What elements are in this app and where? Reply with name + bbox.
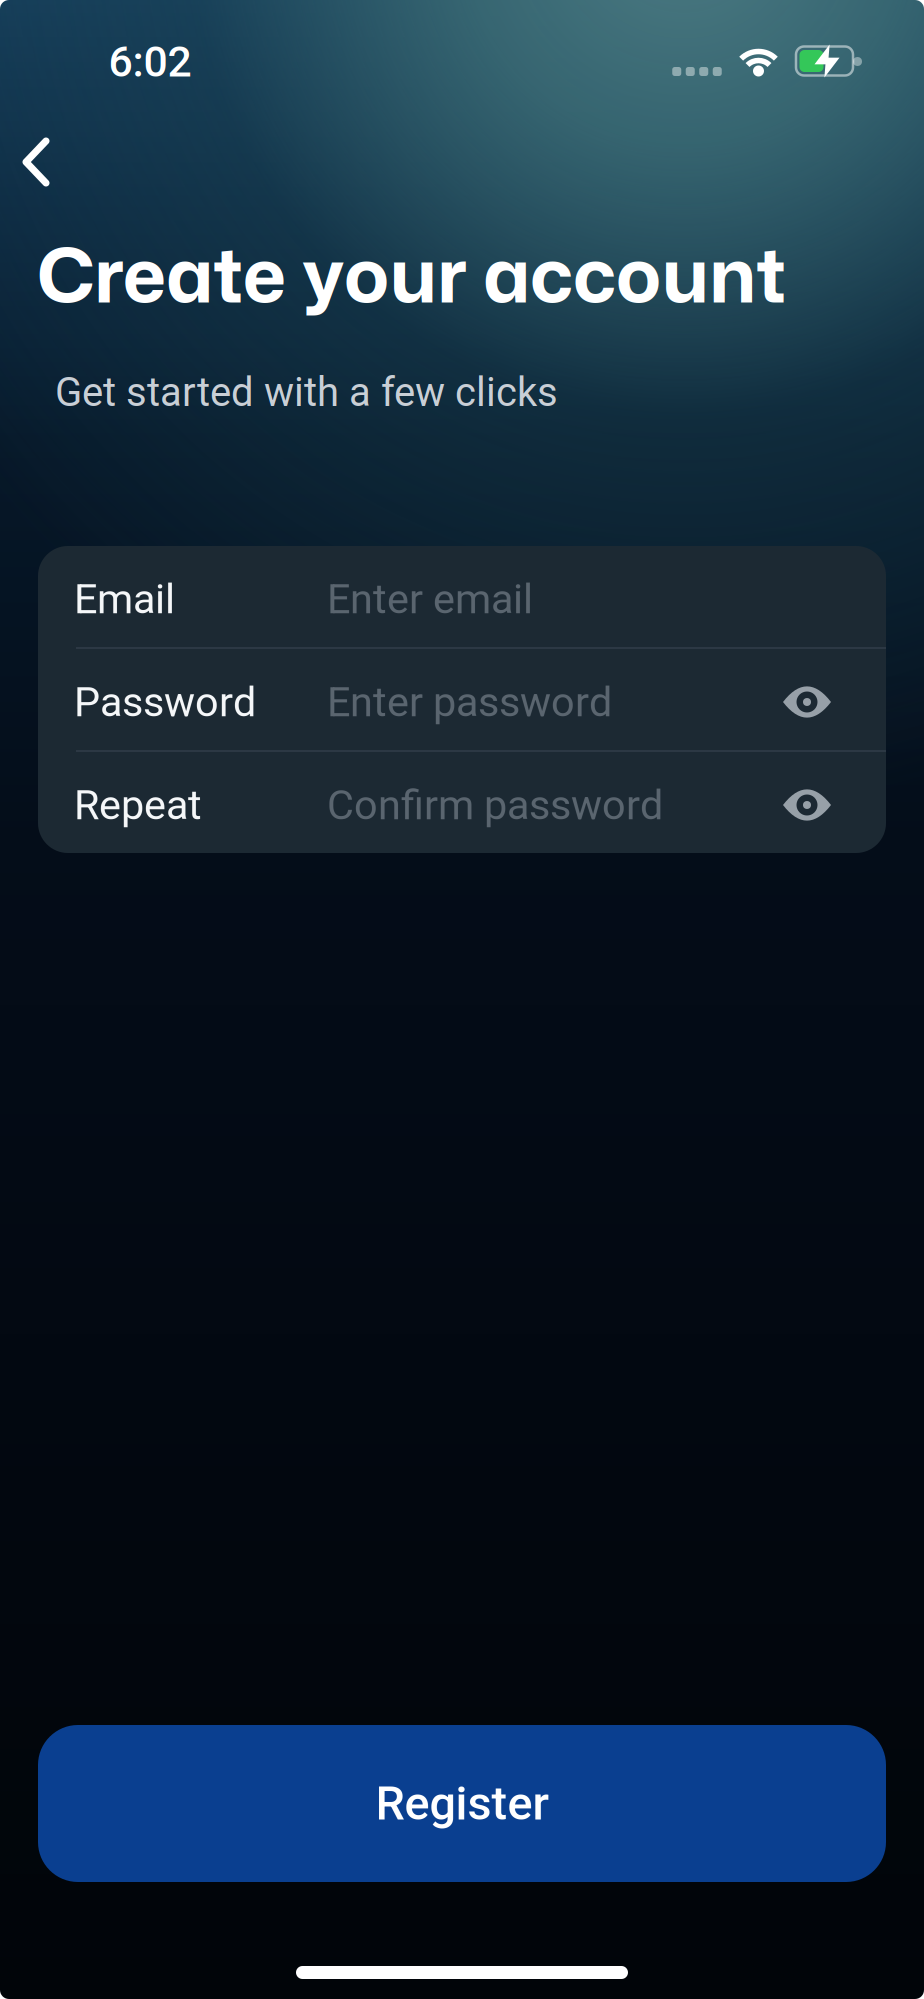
staticText: Enter password [327,678,612,726]
button[interactable]: Email [38,546,886,647]
button[interactable]: Repeat [38,752,886,853]
staticText: Repeat [74,781,202,829]
staticText: Email [74,575,175,623]
staticText: Get started with a few clicks [55,369,558,416]
button[interactable] [783,792,831,817]
staticText: 6:02 [108,37,191,87]
button[interactable]: Password [38,649,886,750]
staticText: Enter email [327,575,533,623]
button[interactable]: Register [38,1725,886,1882]
button[interactable] [783,689,831,714]
staticText: Create your account [37,221,786,326]
staticText: Confirm password [327,781,663,829]
staticText: Register [375,1776,548,1831]
staticText: Password [74,678,256,726]
button[interactable] [0,131,86,193]
